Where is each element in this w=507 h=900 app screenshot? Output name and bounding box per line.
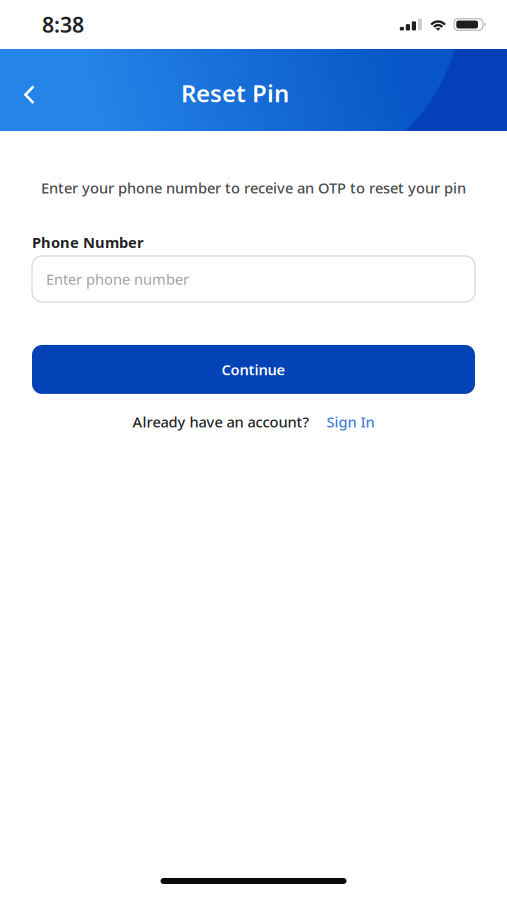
button[interactable]: Back <box>7 73 51 117</box>
staticText: Sign In <box>326 412 374 431</box>
staticText: Reset Pin <box>181 77 289 109</box>
staticText: Continue <box>221 360 285 379</box>
staticText: 8:38 <box>42 10 84 39</box>
staticText: Already have an account? <box>132 412 309 431</box>
staticText: Enter your phone number to receive an OT… <box>41 178 466 197</box>
button[interactable]: Continue <box>32 345 475 394</box>
button[interactable]: Sign In <box>309 412 374 431</box>
staticText: Phone Number <box>32 232 144 252</box>
staticText: Enter phone number <box>46 269 189 289</box>
